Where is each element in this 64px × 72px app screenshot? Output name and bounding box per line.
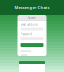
staticText: Messenger Chats — [14, 5, 49, 10]
staticText: Search — [28, 16, 36, 20]
button[interactable] — [20, 43, 43, 47]
staticText: Password — [20, 32, 32, 36]
button[interactable] — [19, 61, 45, 64]
staticText: Email address — [20, 23, 37, 26]
